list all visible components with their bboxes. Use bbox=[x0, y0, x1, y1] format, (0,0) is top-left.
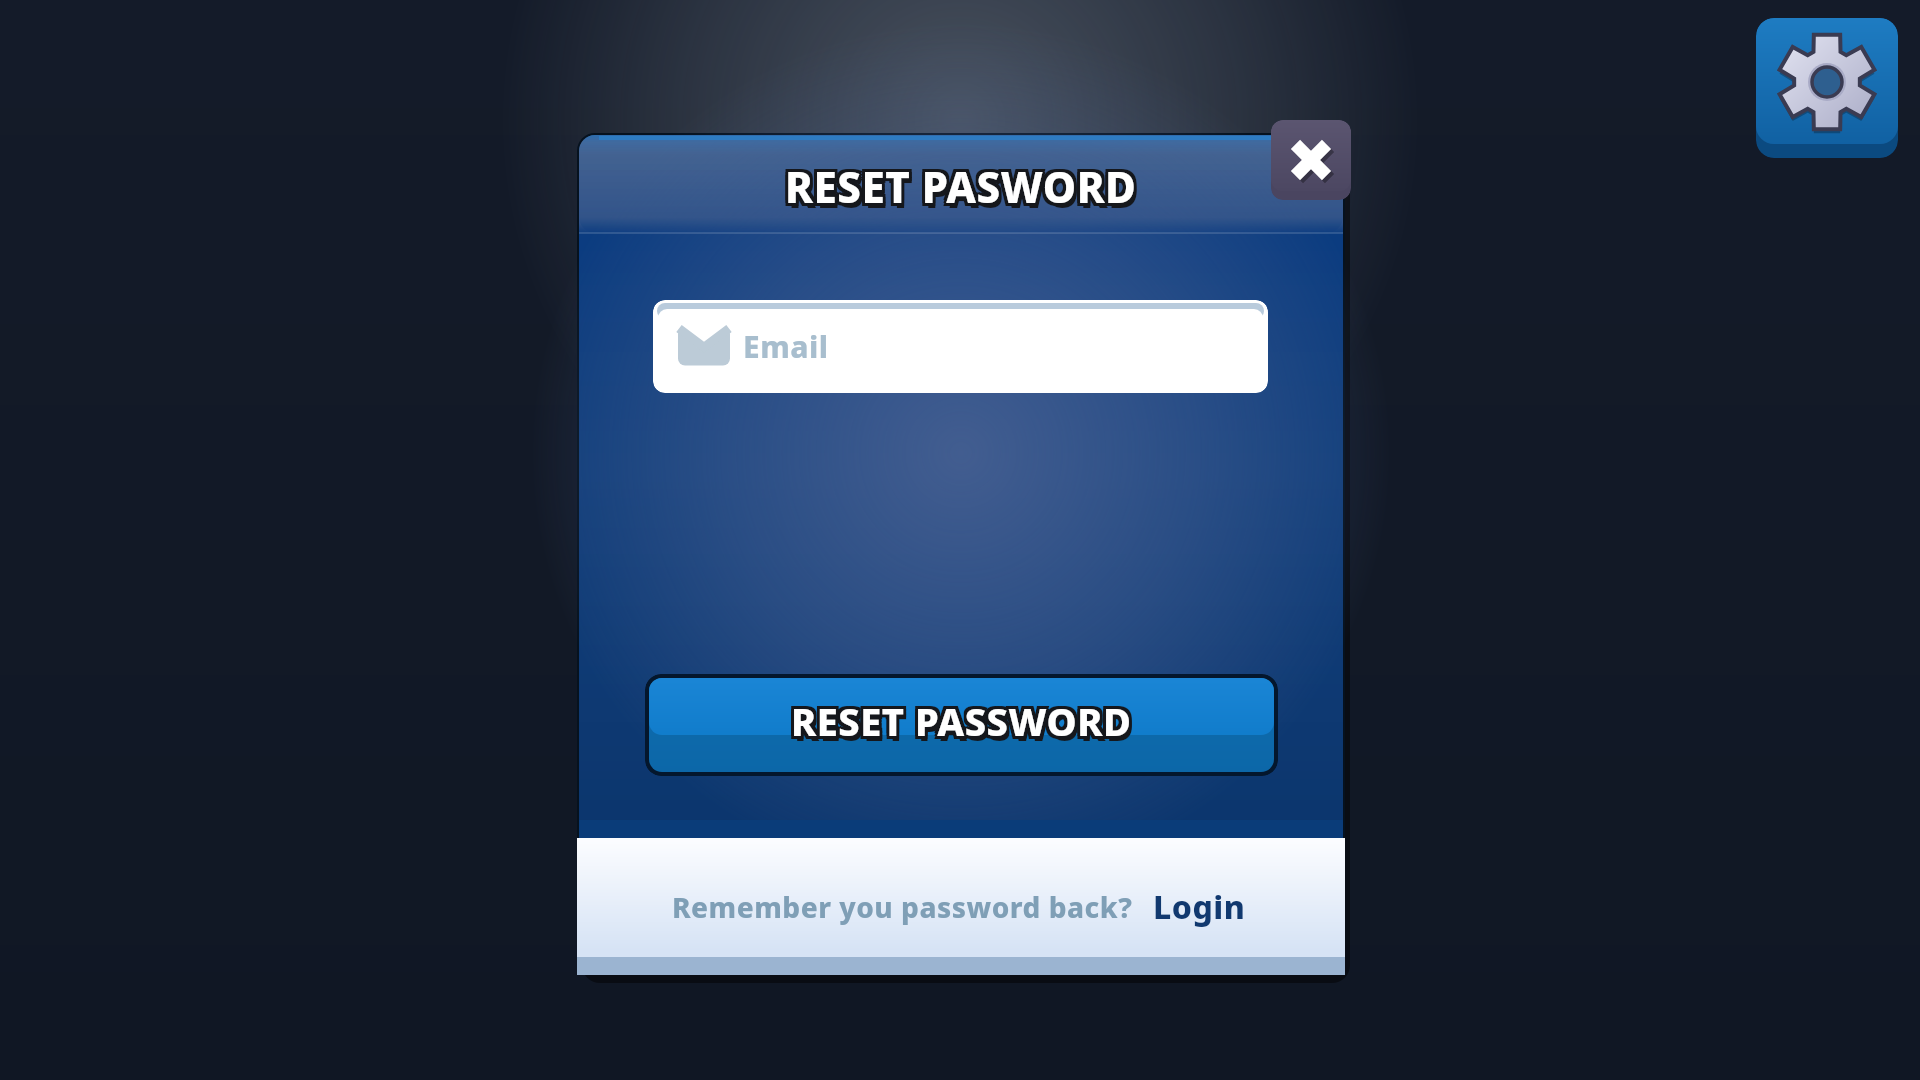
staticText: RESET PASWORD bbox=[782, 158, 1134, 212]
staticText: RESET PASSWORD bbox=[794, 695, 1135, 747]
staticText: RESET PASSWORD bbox=[794, 700, 1135, 752]
staticText: RESET PASSWORD bbox=[788, 698, 1129, 750]
staticText: RESET PASWORD bbox=[788, 155, 1140, 209]
staticText: RESET PASWORD bbox=[788, 158, 1140, 212]
staticText: RESET PASWORD bbox=[788, 163, 1140, 217]
staticText: RESET PASSWORD bbox=[788, 695, 1129, 747]
staticText: RESET PASWORD bbox=[785, 155, 1137, 209]
button[interactable]: Settings bbox=[1756, 18, 1898, 158]
staticText: RESET PASWORD bbox=[785, 161, 1137, 215]
staticText: Remember you password back? bbox=[672, 888, 1133, 926]
staticText: RESET PASWORD bbox=[782, 161, 1134, 215]
button[interactable]: Login bbox=[1149, 879, 1250, 935]
staticText: RESET PASSWORD bbox=[794, 698, 1135, 750]
button[interactable]: Email bbox=[653, 300, 1268, 393]
staticText: RESET PASSWORD bbox=[791, 692, 1132, 744]
button[interactable]: RESET PASSWORD bbox=[645, 674, 1278, 776]
staticText: RESET PASWORD bbox=[788, 161, 1140, 215]
staticText: RESET PASSWORD bbox=[791, 698, 1132, 750]
staticText: RESET PASSWORD bbox=[788, 692, 1129, 744]
staticText: RESET PASSWORD bbox=[791, 695, 1132, 747]
staticText: Login bbox=[1153, 885, 1246, 929]
staticText: RESET PASSWORD bbox=[794, 692, 1135, 744]
staticText: RESET PASWORD bbox=[785, 158, 1137, 212]
staticText: RESET PASWORD bbox=[782, 155, 1134, 209]
button[interactable]: Close bbox=[1271, 120, 1351, 200]
staticText: Email bbox=[743, 326, 829, 367]
